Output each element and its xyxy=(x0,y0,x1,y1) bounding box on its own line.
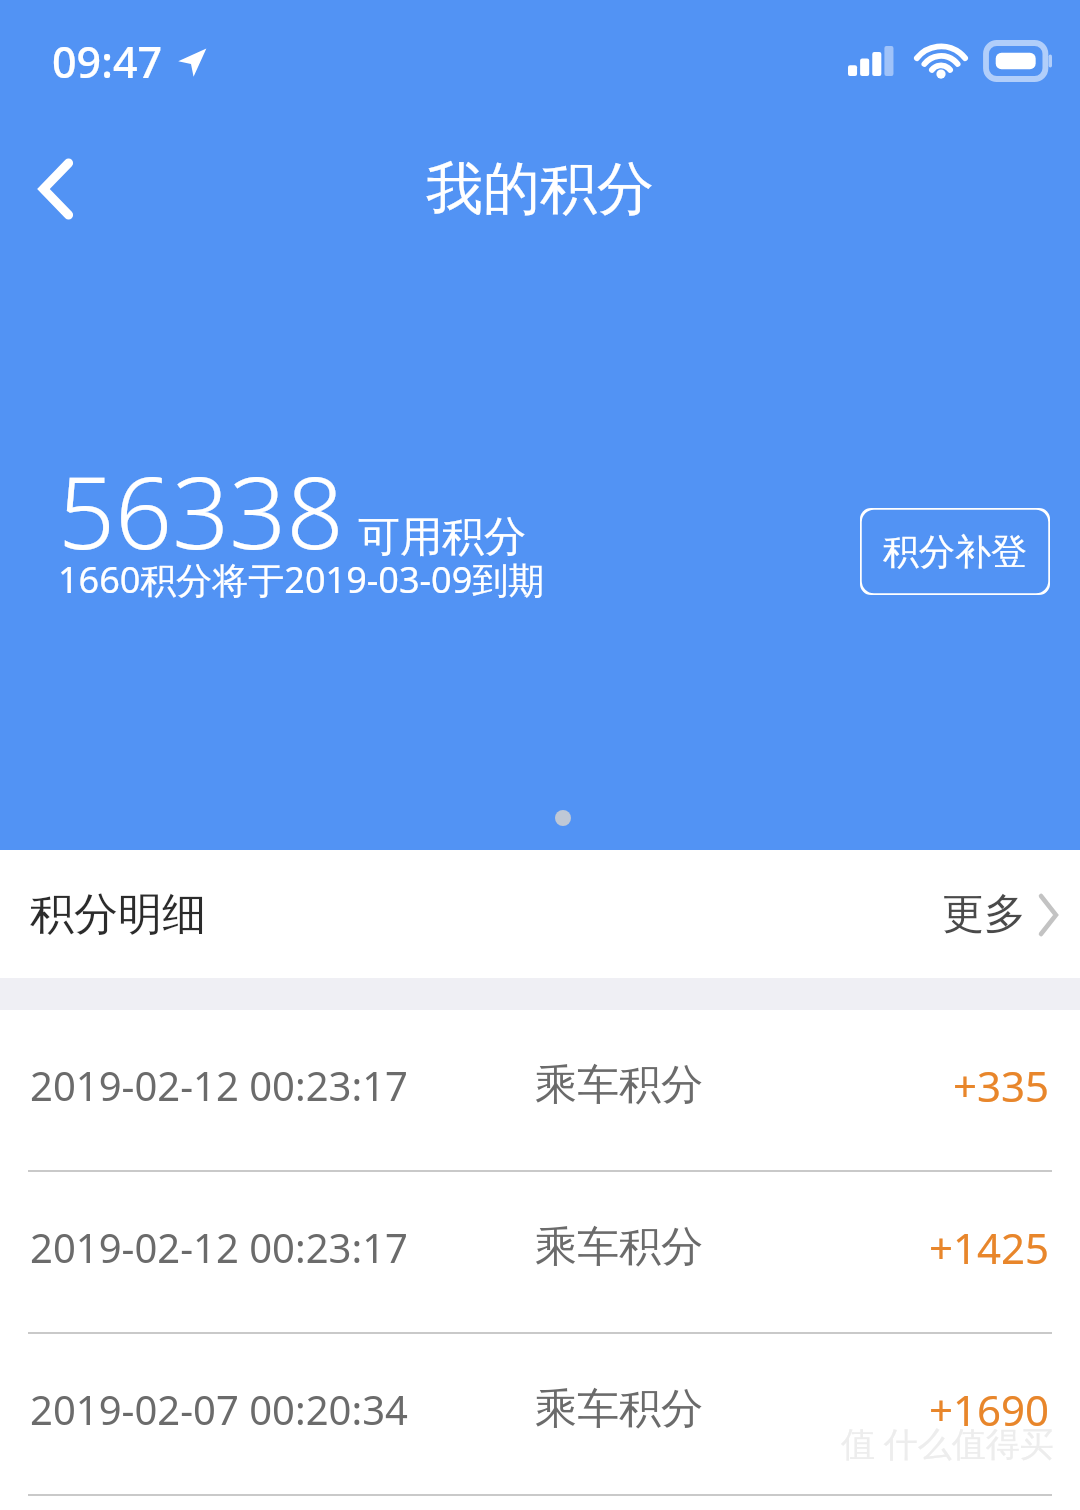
staticText: 09:47 xyxy=(52,32,163,91)
staticText: 值 什么值得买 xyxy=(841,1420,1054,1466)
staticText: 乘车积分 xyxy=(535,1221,703,1274)
button[interactable]: 2019-02-12 00:23:17 xyxy=(0,1010,1080,1170)
staticText: 2019-02-12 00:23:17 xyxy=(30,1220,408,1274)
button[interactable]: 2019-02-12 00:23:17 xyxy=(0,1172,1080,1332)
button[interactable]: 更多 xyxy=(942,888,1058,941)
staticText: 积分明细 xyxy=(30,887,206,942)
staticText: 2019-02-07 00:20:34 xyxy=(30,1382,408,1436)
staticText: 更多 xyxy=(942,888,1026,941)
staticText: 乘车积分 xyxy=(535,1059,703,1112)
button[interactable]: Back xyxy=(0,133,112,245)
staticText: 2019-02-12 00:23:17 xyxy=(30,1058,408,1112)
staticText: 1660积分将于2019-03-09到期 xyxy=(58,555,545,604)
staticText: +1690 xyxy=(929,1381,1050,1438)
staticText: +335 xyxy=(953,1057,1050,1114)
button[interactable]: 2019-02-07 00:20:34 xyxy=(0,1334,1080,1494)
staticText: +1425 xyxy=(929,1219,1050,1276)
staticText: 积分补登 xyxy=(883,529,1027,574)
staticText: 56338 xyxy=(58,442,344,578)
staticText: 可用积分 xyxy=(358,511,526,564)
staticText: 我的积分 xyxy=(426,153,654,225)
button[interactable]: 积分补登 xyxy=(860,508,1050,595)
staticText: 乘车积分 xyxy=(535,1383,703,1436)
